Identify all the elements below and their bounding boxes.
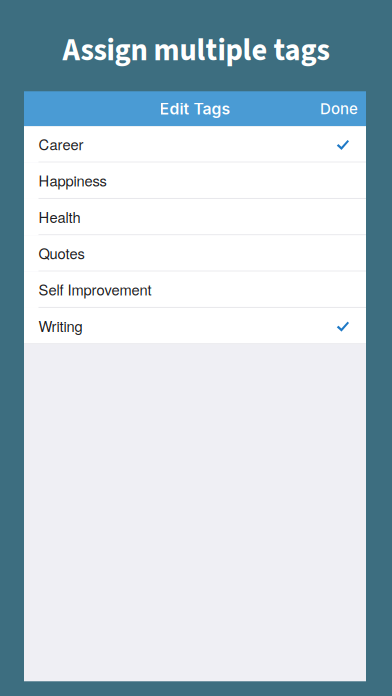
staticText: Writing — [38, 315, 82, 336]
button[interactable]: Career — [24, 126, 366, 163]
button[interactable]: Writing — [24, 308, 366, 344]
staticText: Assign multiple tags — [62, 29, 329, 72]
staticText: Career — [38, 133, 83, 154]
staticText: Health — [38, 206, 80, 227]
staticText: Quotes — [38, 242, 84, 263]
staticText: Self Improvement — [38, 279, 151, 300]
staticText: Done — [320, 100, 358, 118]
staticText: Edit Tags — [159, 99, 230, 118]
button[interactable]: Self Improvement — [24, 272, 366, 308]
button[interactable]: Health — [24, 199, 366, 235]
button[interactable]: Happiness — [24, 163, 366, 199]
button[interactable]: Quotes — [24, 235, 366, 272]
button[interactable]: Done — [308, 91, 366, 127]
staticText: Happiness — [38, 170, 106, 191]
